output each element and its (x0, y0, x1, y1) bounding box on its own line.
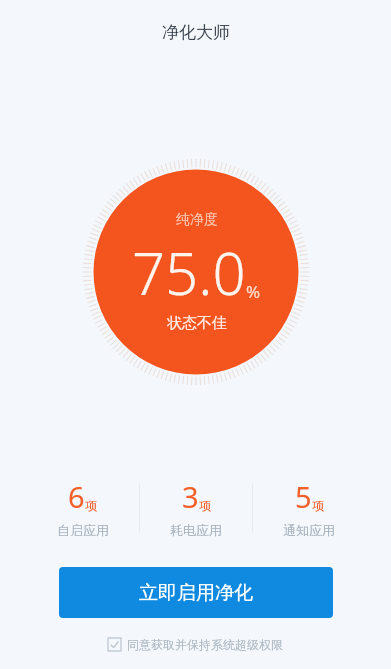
staticText: 自启应用 (57, 522, 109, 538)
staticText: 5 (295, 477, 312, 516)
staticText: 项 (312, 498, 324, 513)
staticText: 75.0 (132, 233, 246, 312)
staticText: 同意获取并保持系统超级权限 (127, 637, 283, 652)
button[interactable]: 6 (26, 477, 139, 538)
staticText: 状态不佳 (167, 314, 227, 333)
staticText: 3 (182, 477, 199, 516)
staticText: 立即启用净化 (139, 581, 253, 605)
button[interactable]: 3 (140, 477, 252, 538)
staticText: 通知应用 (283, 522, 335, 538)
staticText: 项 (199, 498, 211, 513)
other: Agree to keep super permission (108, 638, 121, 651)
staticText: 项 (85, 498, 97, 513)
staticText: 净化大师 (162, 22, 230, 43)
button[interactable]: 立即启用净化 (59, 567, 333, 618)
staticText: % (246, 280, 261, 303)
staticText: 耗电应用 (170, 522, 222, 538)
button[interactable]: 5 (253, 477, 365, 538)
staticText: 纯净度 (176, 211, 218, 229)
button[interactable]: Agree to keep super permission (104, 633, 287, 656)
staticText: 6 (68, 477, 85, 516)
